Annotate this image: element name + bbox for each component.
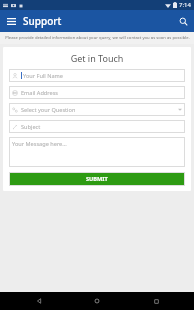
staticText: Subject (21, 123, 182, 131)
staticText: Email Address (21, 89, 182, 97)
staticText: Support (23, 14, 62, 28)
button[interactable]: Home (77, 292, 117, 310)
button[interactable]: Your Message here... (9, 137, 185, 167)
button[interactable]: Your Full Name (9, 69, 185, 82)
staticText: 7:14 (179, 1, 191, 9)
staticText: Your Message here... (12, 140, 67, 148)
button[interactable]: Email Address (9, 86, 185, 99)
staticText: SUBMIT (86, 175, 108, 183)
staticText: Select your Question (21, 106, 178, 114)
button[interactable]: Recent apps (136, 292, 176, 310)
button[interactable]: Search (175, 13, 191, 29)
staticText: Get in Touch (9, 52, 185, 64)
button[interactable]: SUBMIT (9, 172, 185, 186)
button[interactable]: Select your Question (9, 103, 185, 116)
button[interactable]: Subject (9, 120, 185, 133)
staticText: Your Full Name (23, 72, 182, 80)
button[interactable]: Back (19, 292, 59, 310)
button[interactable]: Open navigation menu (3, 13, 19, 29)
staticText: Please provide detailed information abou… (5, 35, 190, 41)
